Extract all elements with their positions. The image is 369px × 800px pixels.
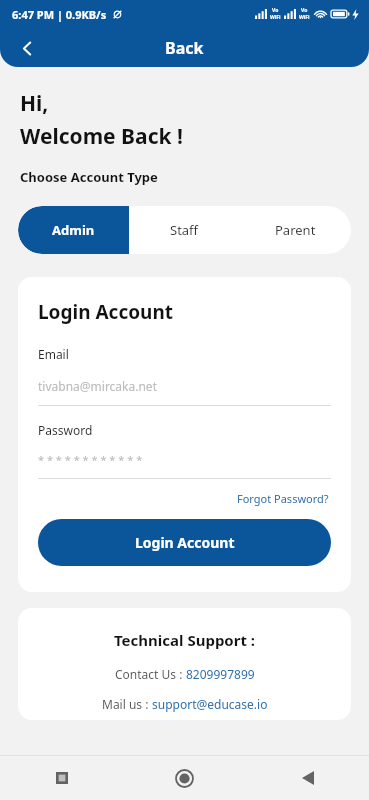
staticText: 8209997899 [186,666,255,682]
staticText: Welcome Back ! [20,122,183,151]
staticText: * * * * * * * * * * * * [38,452,143,467]
button[interactable]: Back [246,756,369,800]
staticText: Choose Account Type [20,168,158,186]
staticText: Contact Us : [115,666,186,682]
button[interactable]: Back [8,29,46,67]
staticText: Staff [170,221,199,239]
staticText: Technical Support : [114,630,256,650]
staticText: 6:47 PM | 0.9KB/s [12,7,107,22]
staticText: Mail us : [102,696,152,712]
button[interactable]: Home [123,756,246,800]
button[interactable]: Staff [129,206,240,254]
button[interactable]: Mail us : [98,694,272,714]
button[interactable]: Contact Us : [111,664,259,684]
staticText: Vo [301,7,308,14]
staticText: Vo [272,7,279,14]
button[interactable]: Parent [240,206,351,254]
button[interactable]: Recent apps [0,756,123,800]
staticText: Login Account [135,533,235,552]
staticText: Hi, [20,89,49,118]
staticText: WiFi [270,14,281,21]
staticText: tivabna@mircaka.net [38,378,157,394]
button[interactable]: Login Account [38,519,331,566]
staticText: Admin [52,221,95,239]
staticText: support@educase.io [152,696,268,712]
staticText: Login Account [38,299,174,325]
staticText: Back [165,37,204,59]
staticText: Forgot Password? [237,491,329,506]
staticText: Password [38,422,93,438]
staticText: Parent [275,221,316,239]
staticText: Email [38,346,69,362]
staticText: WiFi [299,14,310,21]
button[interactable]: Forgot Password? [235,488,331,509]
button[interactable]: Admin [18,206,129,254]
